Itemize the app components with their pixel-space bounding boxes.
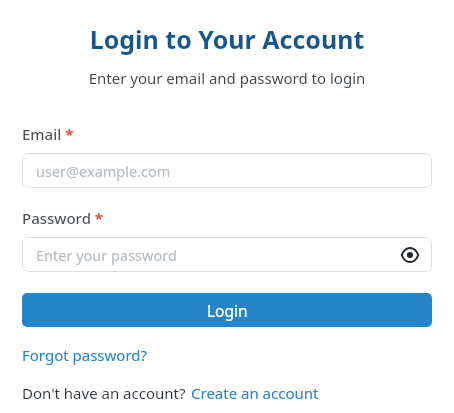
staticText: Enter your email and password to login <box>0 68 454 88</box>
staticText: Login <box>207 300 248 321</box>
button[interactable]: Show password <box>396 241 424 269</box>
button[interactable]: Login <box>22 293 432 327</box>
button[interactable]: Forgot password? <box>22 345 148 365</box>
staticText: Forgot password? <box>22 345 148 365</box>
staticText: user@example.com <box>36 161 171 181</box>
staticText: Create an account <box>191 383 319 403</box>
staticText: Password * <box>22 208 103 228</box>
staticText: Enter your password <box>36 245 177 265</box>
staticText: Don't have an account? <box>22 383 186 403</box>
button[interactable]: Create an account <box>191 383 319 403</box>
staticText: Login to Your Account <box>0 22 454 56</box>
button[interactable]: user@example.com <box>22 153 432 188</box>
button[interactable]: Enter your password <box>22 237 432 272</box>
staticText: Email * <box>22 124 74 144</box>
